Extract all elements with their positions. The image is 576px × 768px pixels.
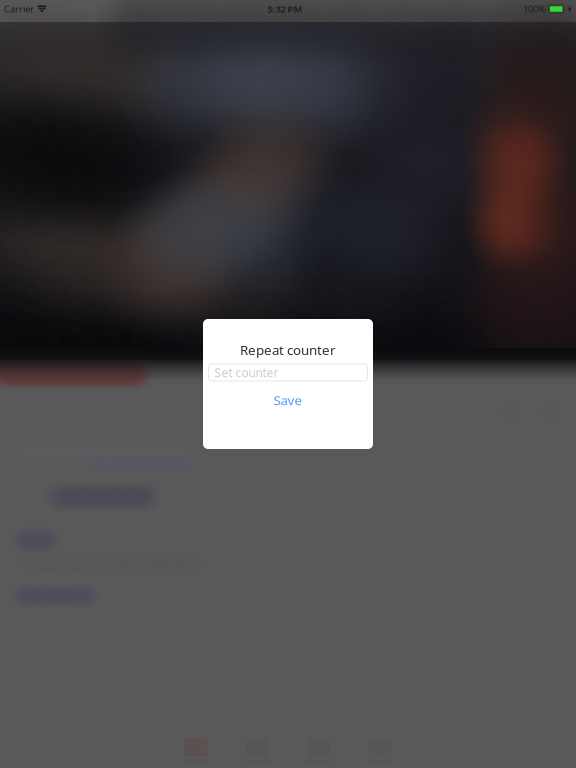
staticText: Save: [273, 391, 302, 409]
staticText: 100%: [523, 3, 546, 15]
staticText: 5:32 PM: [268, 3, 303, 15]
staticText: Carrier: [4, 3, 34, 15]
staticText: Repeat counter: [240, 341, 336, 359]
button[interactable]: Save: [203, 390, 373, 410]
staticText: Set counter: [214, 364, 278, 380]
button[interactable]: Tab 1: [165, 738, 226, 764]
